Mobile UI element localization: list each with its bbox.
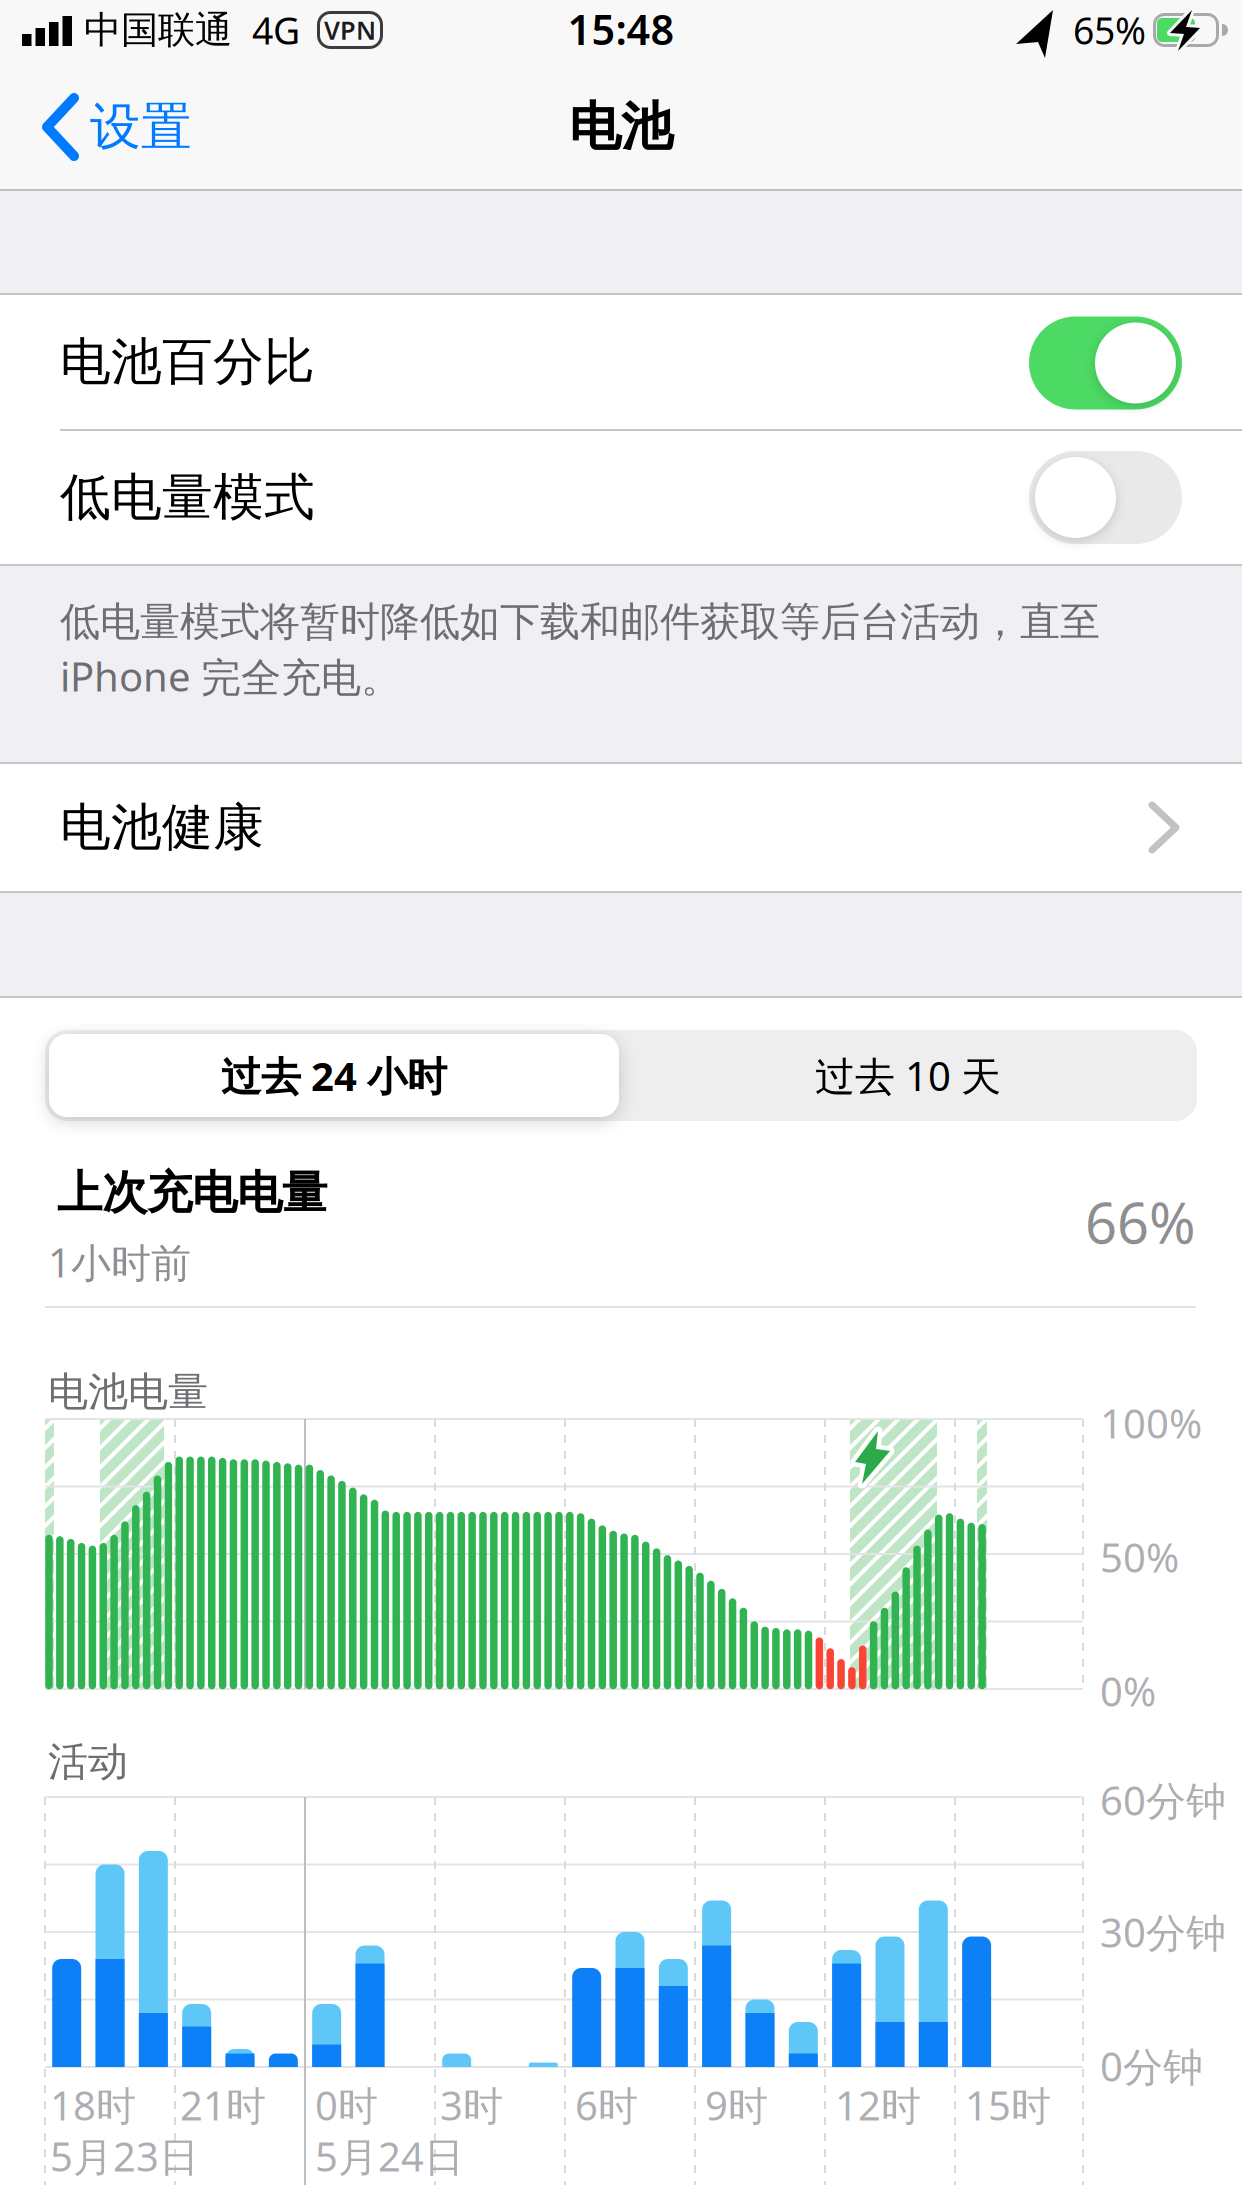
staticText: 66% — [1085, 1185, 1196, 1259]
staticText: 0时 — [315, 2078, 378, 2131]
staticText: 电池 — [569, 95, 673, 159]
button[interactable]: 过去 24 小时 — [49, 1034, 619, 1117]
staticText: 6时 — [575, 2078, 638, 2131]
staticText: 50% — [1100, 1530, 1179, 1583]
staticText: 上次充电电量 — [57, 1165, 327, 1221]
staticText: 1小时前 — [48, 1235, 191, 1288]
staticText: 0分钟 — [1100, 2039, 1203, 2092]
staticText: 100% — [1100, 1396, 1202, 1449]
staticText: 15:48 — [567, 2, 674, 56]
staticText: 4G — [252, 5, 300, 55]
staticText: 60分钟 — [1100, 1773, 1226, 1826]
staticText: 9时 — [705, 2078, 768, 2131]
staticText: 活动 — [48, 1737, 128, 1786]
staticText: 中国联通 — [84, 7, 232, 53]
staticText: 21时 — [180, 2078, 266, 2131]
staticText: 5月23日 — [50, 2129, 199, 2182]
staticText: 30分钟 — [1100, 1905, 1226, 1958]
staticText: 低电量模式 — [60, 466, 315, 529]
staticText: 电池健康 — [60, 796, 264, 859]
staticText: 5月24日 — [315, 2129, 464, 2182]
staticText: 65% — [1073, 5, 1146, 55]
button[interactable]: 设置 — [40, 90, 240, 164]
staticText: 0% — [1100, 1664, 1156, 1717]
staticText: 设置 — [90, 96, 192, 158]
staticText: 过去 10 天 — [815, 1049, 1001, 1102]
staticText: 15时 — [965, 2078, 1051, 2131]
button[interactable]: 过去 10 天 — [623, 1034, 1193, 1117]
staticText: 低电量模式将暂时降低如下载和邮件获取等后台活动，直至 — [60, 597, 1100, 646]
staticText: 12时 — [835, 2078, 921, 2131]
staticText: 电池电量 — [48, 1367, 208, 1416]
staticText: VPN — [324, 13, 376, 47]
staticText: 3时 — [440, 2078, 503, 2131]
button[interactable]: 低电量模式 — [0, 430, 1242, 563]
button[interactable]: 电池百分比 — [0, 295, 1242, 429]
staticText: 18时 — [50, 2078, 136, 2131]
staticText: 电池百分比 — [60, 331, 315, 393]
staticText: iPhone 完全充电。 — [60, 649, 401, 703]
button[interactable]: 电池健康 — [0, 764, 1242, 891]
staticText: 过去 24 小时 — [221, 1049, 447, 1102]
